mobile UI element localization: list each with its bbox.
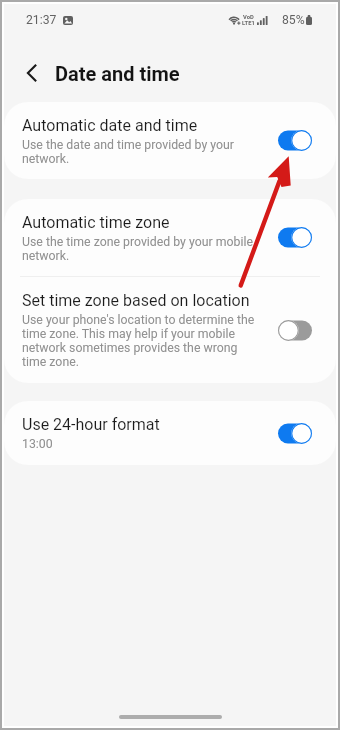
staticText: Date and time xyxy=(55,62,180,85)
staticText: Automatic time zone xyxy=(22,213,170,232)
staticText: Use 24-hour format xyxy=(22,415,160,434)
staticText: Use your phone's location to determine t… xyxy=(22,313,260,369)
staticText: LTE1 xyxy=(242,20,255,26)
staticText: 13:00 xyxy=(22,437,53,451)
staticText: Set time zone based on location xyxy=(22,291,250,310)
button[interactable]: Disabled xyxy=(278,320,312,341)
staticText: Automatic date and time xyxy=(22,116,198,135)
button[interactable]: Enabled xyxy=(278,423,312,444)
button[interactable]: Enabled xyxy=(278,130,312,151)
staticText: VoD xyxy=(243,14,254,20)
staticText: Use the time zone provided by your mobil… xyxy=(22,235,260,263)
button[interactable]: Use 24-hour format xyxy=(4,401,336,465)
staticText: Use the date and time provided by your n… xyxy=(22,138,260,166)
button[interactable]: Navigate up xyxy=(14,55,49,90)
button[interactable]: Enabled xyxy=(278,227,312,248)
staticText: 21:37 xyxy=(26,13,57,27)
button[interactable]: Set time zone based on location xyxy=(4,277,336,383)
button[interactable]: Automatic date and time xyxy=(4,102,336,179)
button[interactable]: Automatic time zone xyxy=(4,199,336,276)
staticText: 85% xyxy=(282,13,305,27)
